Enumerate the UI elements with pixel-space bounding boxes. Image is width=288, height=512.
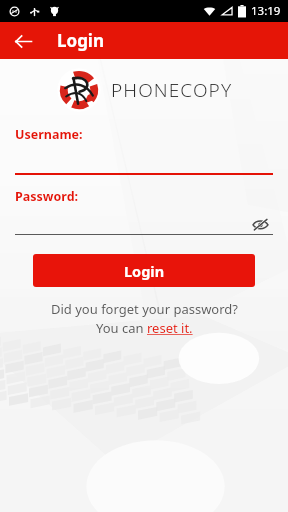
button[interactable]: Back (8, 26, 38, 56)
staticText: Password: (15, 188, 79, 205)
button[interactable]: Show password (247, 211, 273, 237)
staticText: Login (57, 29, 105, 52)
staticText: reset it. (147, 319, 193, 337)
staticText: Did you forget your password? (51, 300, 238, 318)
staticText: You can (96, 319, 147, 337)
staticText: Username: (15, 126, 83, 143)
button[interactable]: Login (33, 254, 255, 287)
button[interactable]: reset it. (147, 319, 193, 337)
staticText: PHONECOPY (111, 77, 233, 103)
staticText: 13:19 (251, 3, 281, 19)
staticText: Login (124, 261, 165, 281)
